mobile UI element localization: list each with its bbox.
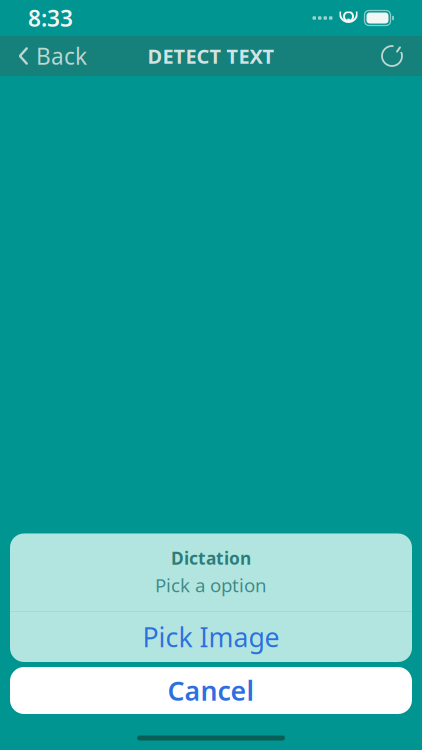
button[interactable]: Back xyxy=(4,36,101,76)
staticText: 8:33 xyxy=(28,3,73,33)
button[interactable]: Cancel xyxy=(10,667,412,714)
staticText: Pick Image xyxy=(142,619,279,655)
button[interactable]: Pick Image xyxy=(10,612,412,662)
staticText: Dictation xyxy=(171,546,251,569)
staticText: Cancel xyxy=(167,673,254,708)
staticText: Pick a option xyxy=(155,572,267,597)
staticText: DETECT TEXT xyxy=(147,43,274,69)
button[interactable]: Refresh xyxy=(366,36,418,76)
staticText: Back xyxy=(36,41,87,71)
